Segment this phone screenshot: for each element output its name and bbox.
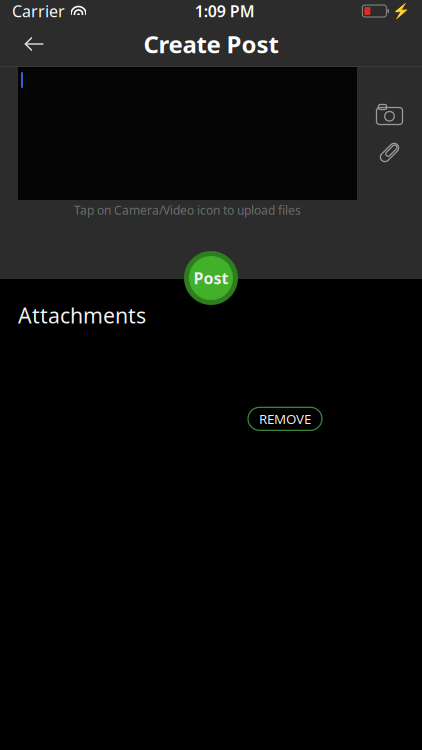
button[interactable]: Camera xyxy=(366,95,412,133)
staticText: Attachments xyxy=(18,301,146,329)
staticText: 1:09 PM xyxy=(195,0,255,22)
staticText: Carrier xyxy=(12,0,65,22)
button[interactable]: Post xyxy=(184,251,238,305)
staticText: Tap on Camera/Video icon to upload files xyxy=(74,202,301,218)
button[interactable]: REMOVE xyxy=(248,407,322,430)
staticText: ⚡ xyxy=(392,3,410,19)
button[interactable]: Attach file xyxy=(366,133,412,171)
button[interactable]: Back xyxy=(12,22,56,66)
staticText: Post xyxy=(193,267,228,289)
staticText: Create Post xyxy=(143,28,278,60)
staticText: REMOVE xyxy=(259,410,311,428)
